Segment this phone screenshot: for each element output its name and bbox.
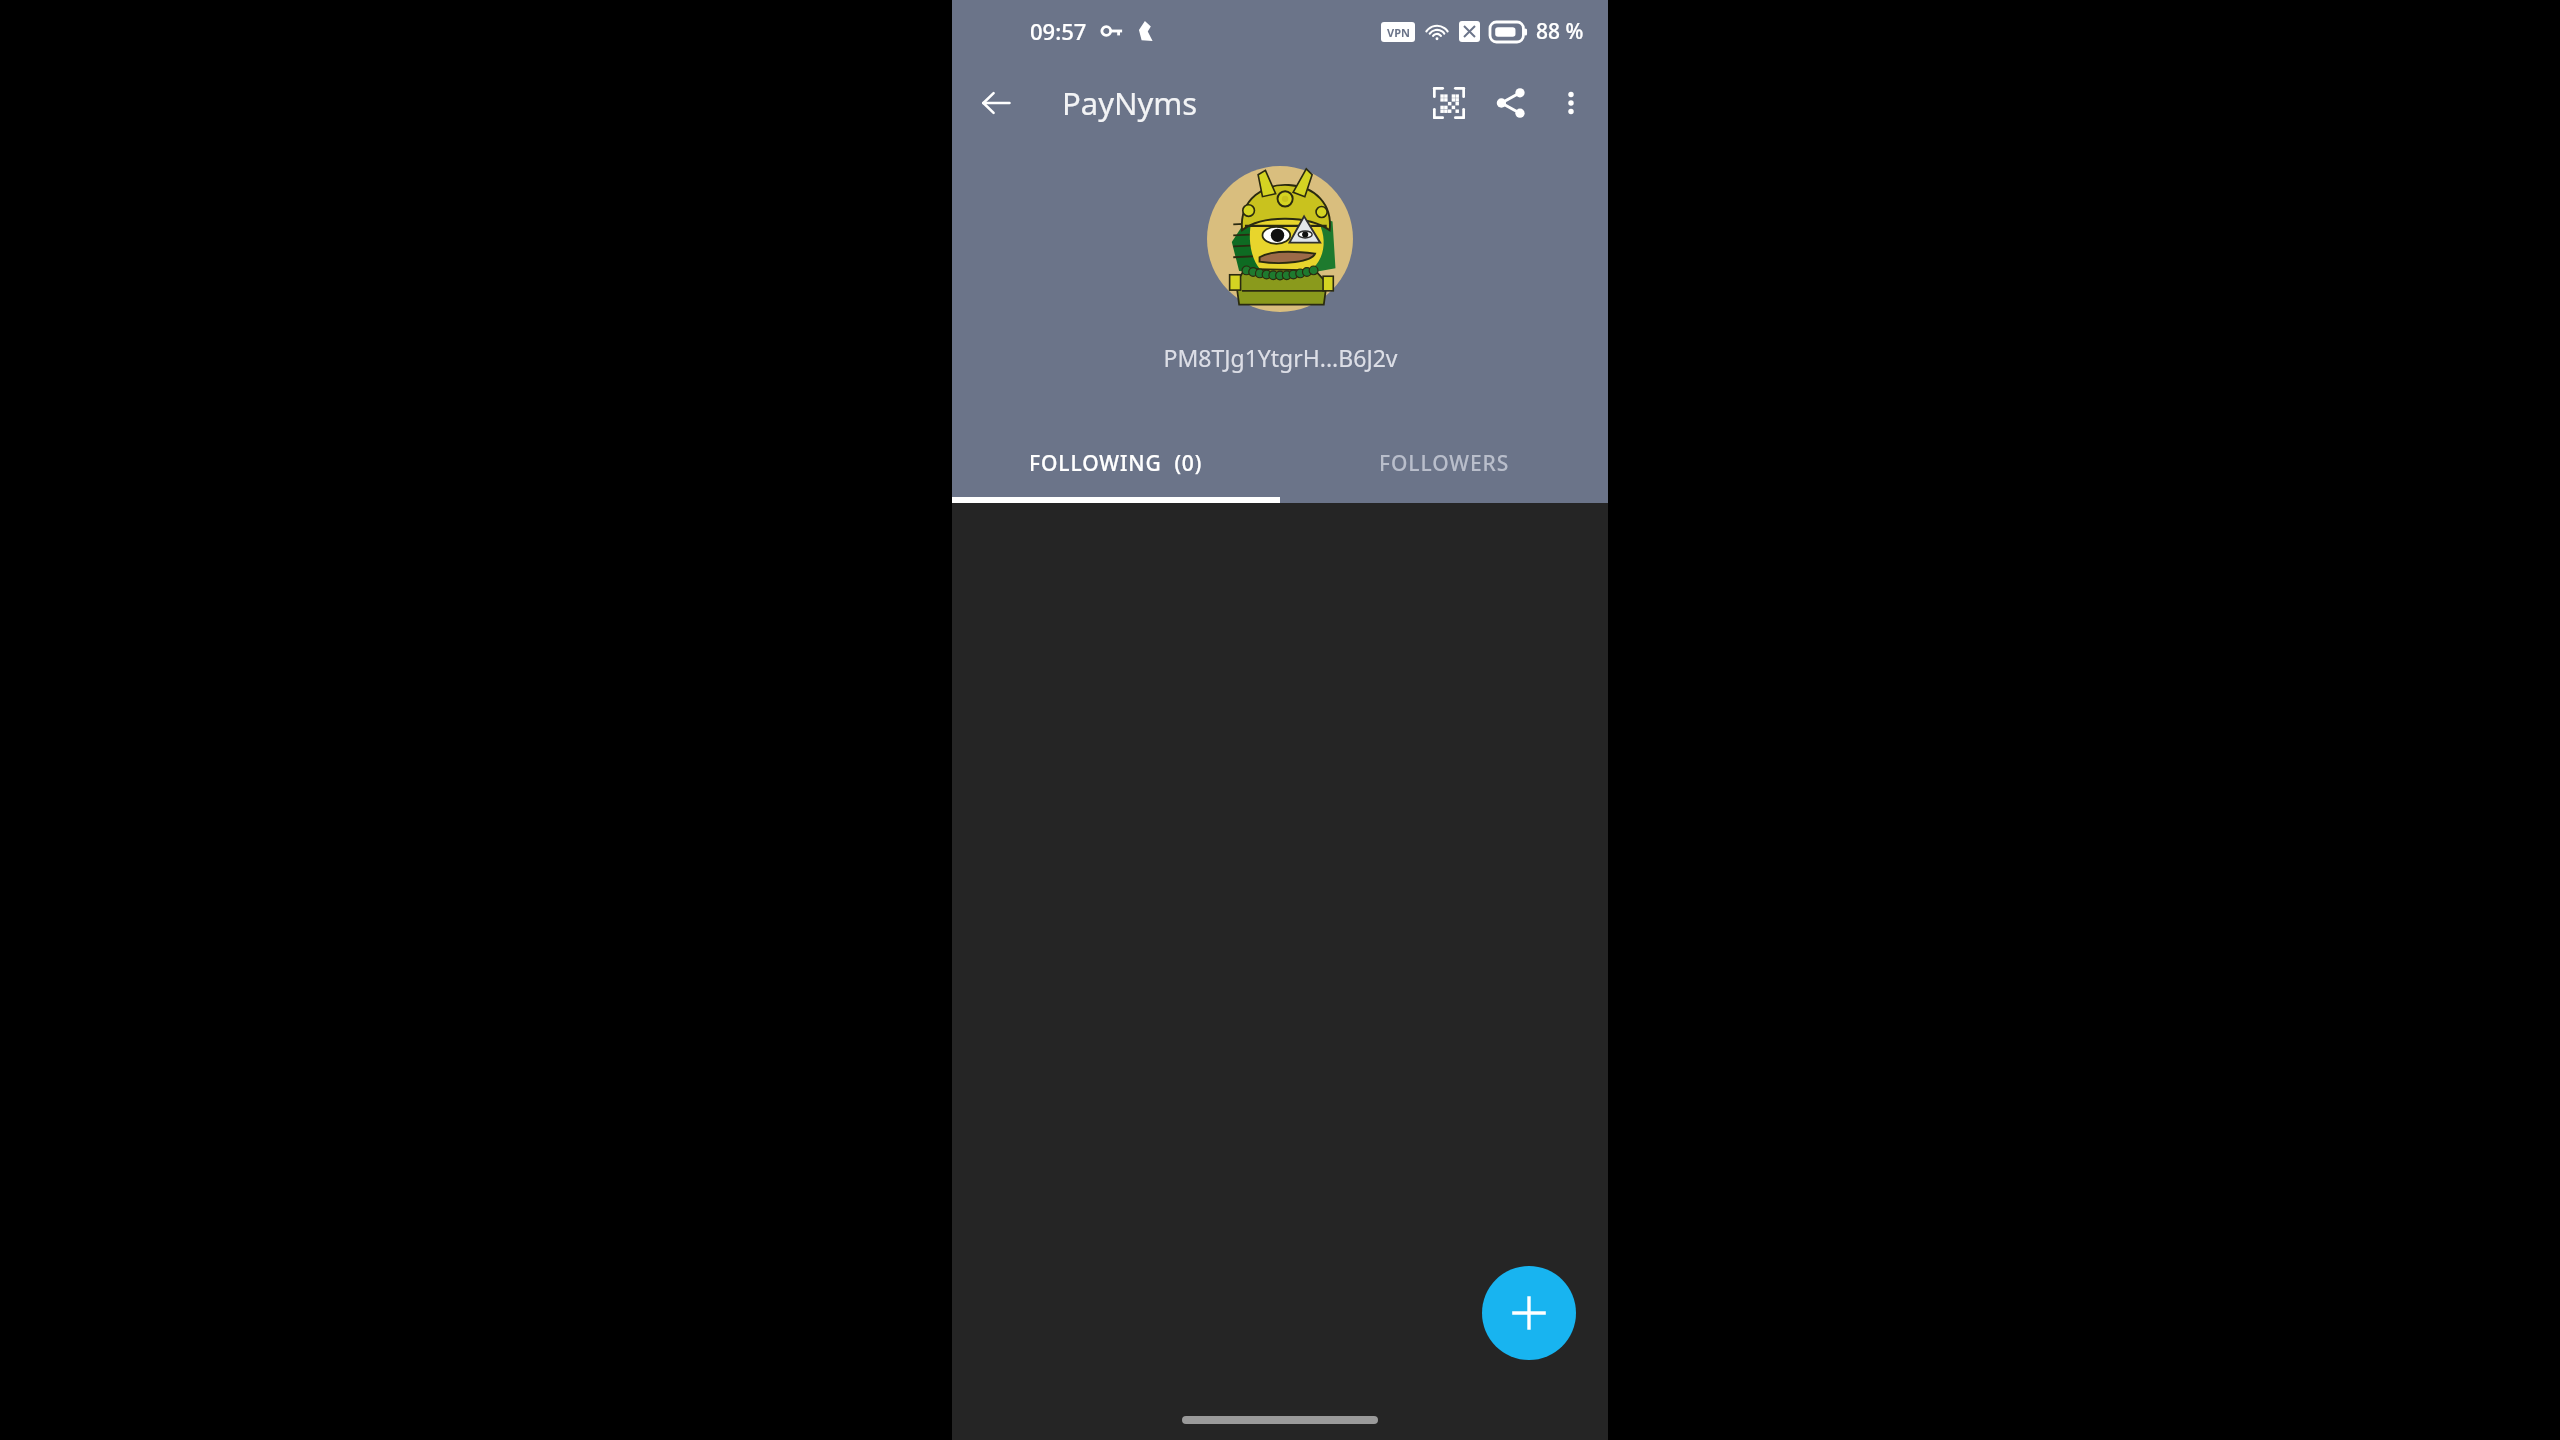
button[interactable]: Back: [964, 71, 1028, 135]
button[interactable]: FOLLOWING (0): [952, 429, 1280, 497]
staticText: 88 %: [1536, 17, 1584, 46]
staticText: PM8TJg1YtgrH...B6J2v: [1163, 342, 1398, 373]
button[interactable]: More options: [1542, 74, 1600, 132]
staticText: FOLLOWING (0): [1029, 449, 1203, 478]
staticText: FOLLOWERS: [1379, 449, 1510, 478]
staticText: PayNyms: [1062, 82, 1198, 124]
button[interactable]: Add PayNym: [1482, 1266, 1576, 1360]
staticText: VPN: [1387, 25, 1410, 40]
button[interactable]: Share: [1480, 72, 1542, 134]
staticText: 09:57: [1030, 16, 1087, 46]
button[interactable]: Scan QR code: [1418, 72, 1480, 134]
button[interactable]: FOLLOWERS: [1280, 429, 1608, 497]
